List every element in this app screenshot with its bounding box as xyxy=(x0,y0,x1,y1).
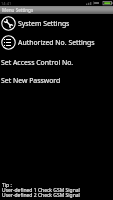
staticText: Menu Settings xyxy=(2,7,34,13)
staticText: Tip : User-defined 1 Check GSM Signal Us… xyxy=(2,182,80,199)
staticText: 14:41 xyxy=(1,1,12,6)
staticText: Set New Password xyxy=(1,76,61,85)
staticText: System Settings xyxy=(18,19,70,28)
staticText: Set Access Control No. xyxy=(1,58,74,67)
button[interactable]: System Settings xyxy=(0,14,113,32)
button[interactable]: Set New Password xyxy=(0,72,113,89)
button[interactable]: Authorized No. Settings xyxy=(0,33,113,51)
staticText: Authorized No. Settings xyxy=(18,38,95,47)
button[interactable]: Set Access Control No. xyxy=(0,54,113,71)
